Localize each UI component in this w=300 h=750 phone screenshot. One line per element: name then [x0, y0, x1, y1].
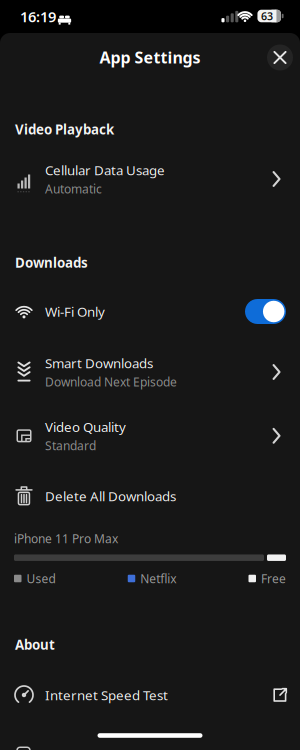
- staticText: 63: [261, 9, 273, 23]
- staticText: Netflix: [140, 570, 176, 586]
- button[interactable]: Video Quality: [0, 413, 300, 459]
- button[interactable]: Cellular Data Usage: [0, 156, 300, 202]
- staticText: Wi-Fi Only: [45, 303, 105, 320]
- staticText: Download Next Episode: [45, 374, 177, 390]
- staticText: Free: [261, 570, 286, 586]
- staticText: Automatic: [45, 181, 102, 197]
- staticText: Downloads: [15, 254, 88, 271]
- staticText: Video Playback: [15, 120, 114, 138]
- button[interactable]: Wi-Fi Only: [0, 288, 300, 334]
- staticText: App Settings: [99, 47, 200, 68]
- button[interactable]: Delete All Downloads: [0, 473, 300, 519]
- staticText: About: [15, 636, 55, 653]
- staticText: Used: [26, 570, 55, 586]
- staticText: 16:19: [20, 7, 56, 26]
- staticText: Delete All Downloads: [45, 487, 176, 505]
- staticText: Internet Speed Test: [45, 686, 168, 704]
- button[interactable]: Internet Speed Test: [0, 672, 300, 718]
- button[interactable]: Wi-Fi Only: [245, 299, 286, 324]
- staticText: Cellular Data Usage: [45, 161, 165, 179]
- staticText: Video Quality: [45, 418, 126, 436]
- staticText: Smart Downloads: [45, 354, 153, 372]
- button[interactable]: Smart Downloads: [0, 349, 300, 395]
- button[interactable]: Close: [267, 44, 293, 70]
- staticText: Standard: [45, 438, 96, 454]
- staticText: iPhone 11 Pro Max: [14, 530, 118, 546]
